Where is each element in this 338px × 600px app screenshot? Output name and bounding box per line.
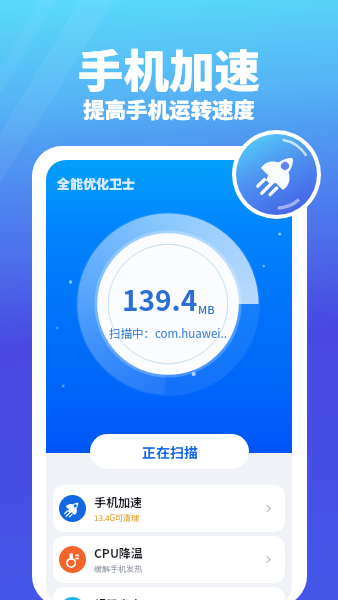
staticText: 139.4 (122, 279, 198, 320)
staticText: MB (198, 301, 215, 317)
button[interactable]: 手机加速 (53, 485, 285, 532)
staticText: 手机加速 (94, 493, 143, 510)
button[interactable]: 超级省电 (53, 587, 285, 600)
staticText: CPU降温 (94, 544, 143, 561)
staticText: 手机加速 (78, 35, 261, 101)
button[interactable]: Boost (236, 134, 317, 215)
staticText: 全能优化卫士 (57, 174, 136, 193)
staticText: 扫描中：com.huawei.. (109, 325, 227, 342)
staticText: 正在扫描 (142, 442, 198, 462)
staticText: 提高手机运转速度 (83, 93, 256, 124)
staticText: 超级省电 (94, 595, 143, 600)
button[interactable]: CPU降温 (53, 536, 285, 583)
button[interactable]: 正在扫描 (90, 434, 249, 469)
staticText: 缓解手机发热 (94, 563, 142, 575)
staticText: 13.4G可清理 (94, 512, 140, 524)
